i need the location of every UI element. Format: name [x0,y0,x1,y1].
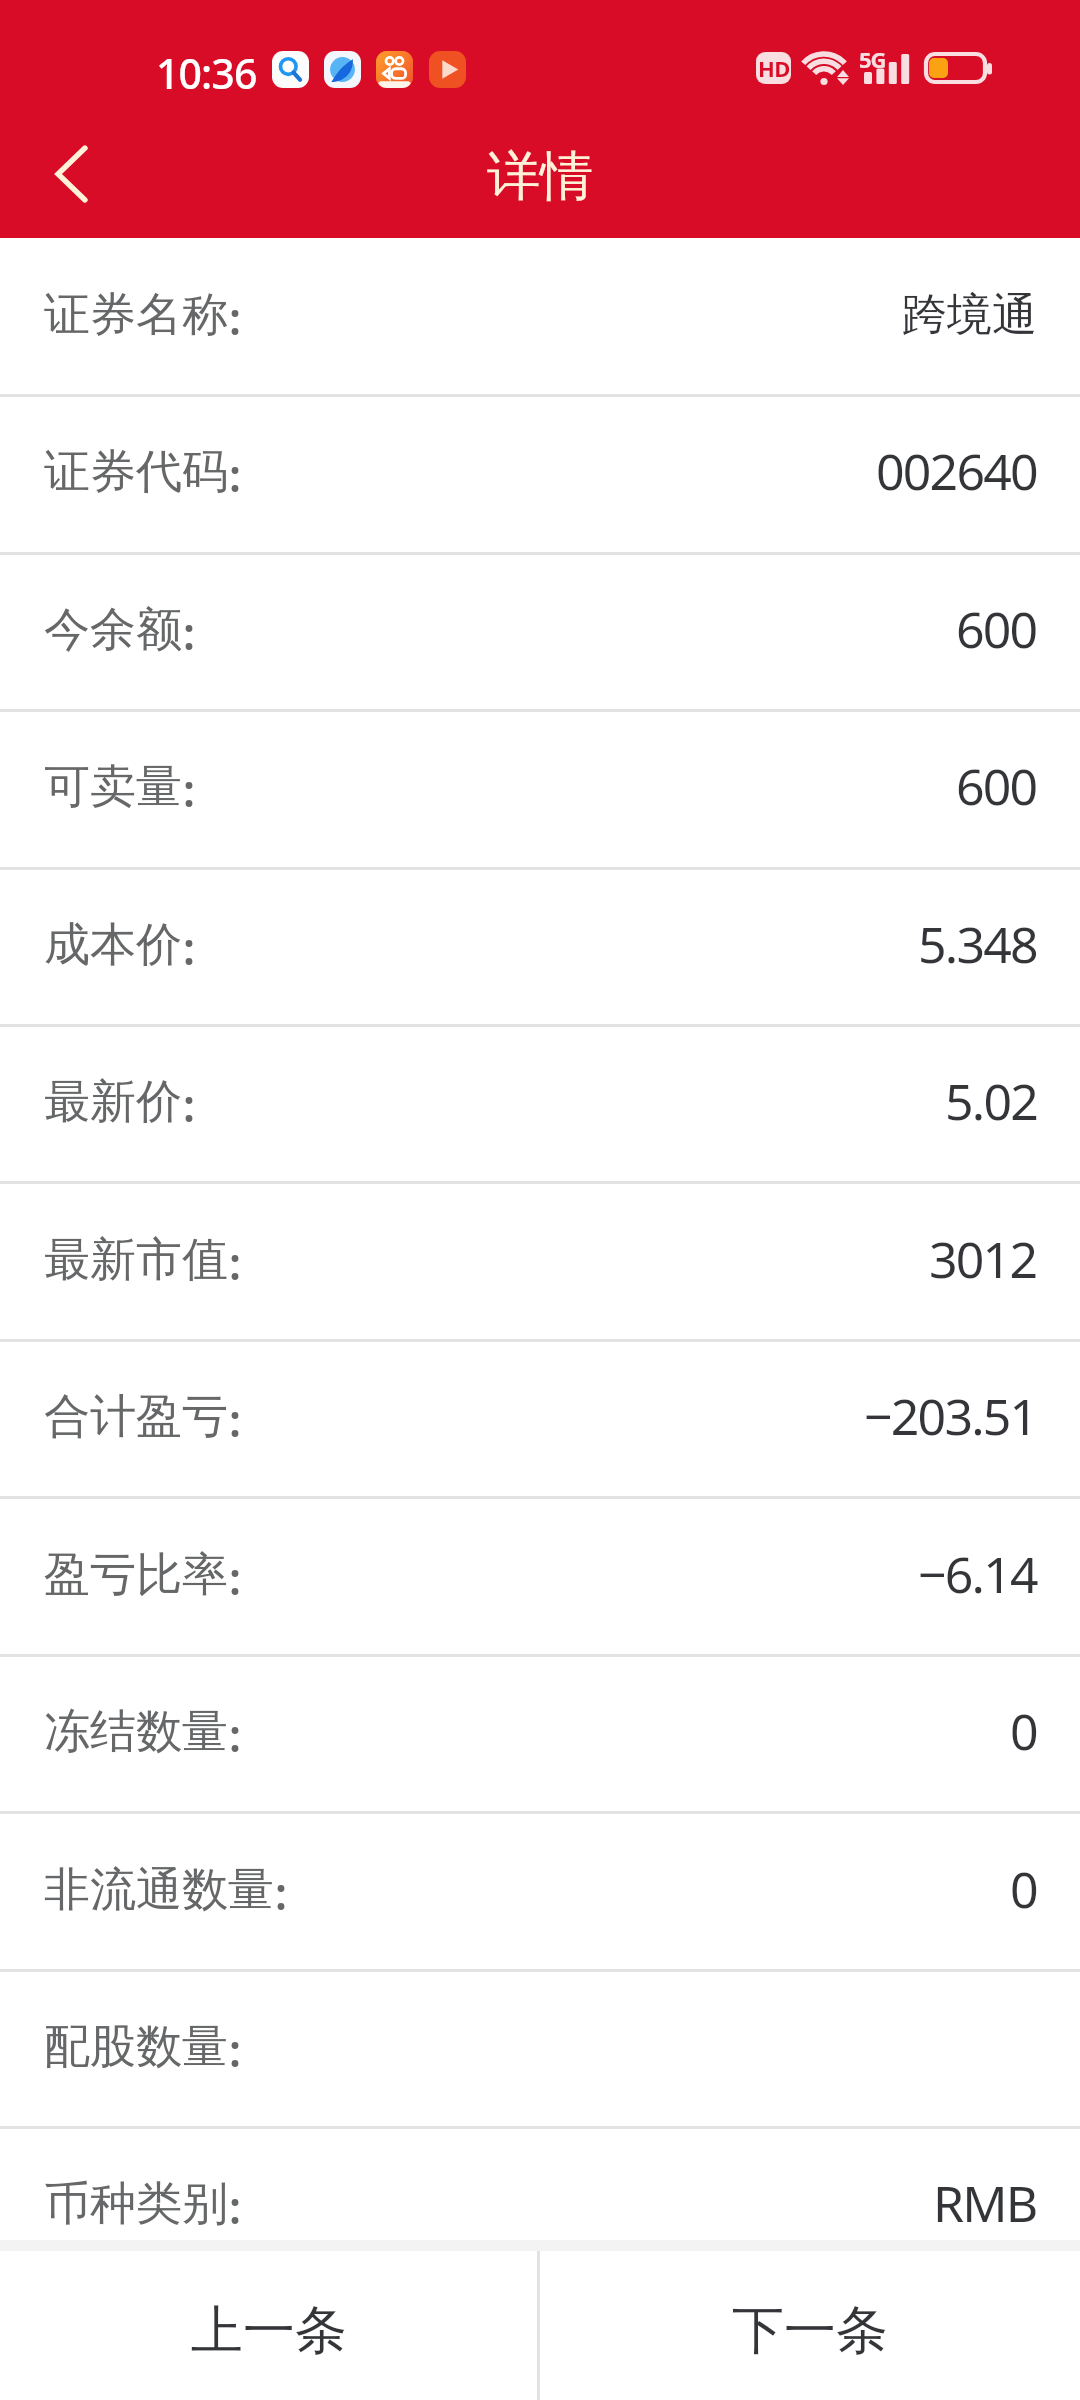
staticText: 5G [859,44,886,74]
staticText: RMB [933,2169,1037,2237]
staticText: 10:36 [156,45,257,101]
staticText: 跨境通 [902,287,1037,344]
button[interactable]: 冻结数量 [0,1655,1080,1812]
staticText: 最新价 [44,1073,182,1131]
button[interactable]: 今余额 [0,553,1080,710]
staticText: 600 [956,595,1037,663]
staticText: 5.348 [918,910,1037,978]
staticText: 002640 [876,437,1037,505]
staticText: 配股数量 [44,2018,228,2076]
button[interactable]: 证券名称 [0,238,1080,395]
staticText: 合计盈亏 [44,1388,228,1446]
staticText: −6.14 [918,1540,1037,1608]
button[interactable]: 币种类别 [0,2127,1080,2240]
staticText: 最新市值 [44,1231,228,1289]
staticText: 0 [1010,1855,1037,1923]
staticText: 详情 [487,143,593,210]
button[interactable]: 上一条 [0,2251,537,2400]
staticText: 证券名称 [44,286,228,344]
staticText: 600 [956,752,1037,820]
button[interactable]: 最新市值 [0,1183,1080,1340]
staticText: 可卖量 [44,758,182,816]
button[interactable]: 可卖量 [0,710,1080,867]
staticText: 证券代码 [44,443,228,501]
staticText: 冻结数量 [44,1703,228,1761]
staticText: 非流通数量 [44,1861,274,1919]
button[interactable]: 证券代码 [0,395,1080,552]
button[interactable]: 配股数量 [0,1970,1080,2127]
staticText: HD [758,53,790,83]
button[interactable]: 盈亏比率 [0,1498,1080,1655]
staticText: 盈亏比率 [44,1546,228,1604]
button[interactable]: 下一条 [540,2251,1080,2400]
button[interactable]: Back [17,118,129,230]
button[interactable]: 最新价 [0,1025,1080,1182]
button[interactable]: 合计盈亏 [0,1340,1080,1497]
staticText: 0 [1010,1697,1037,1765]
staticText: 币种类别 [44,2175,228,2233]
staticText: 上一条 [191,2298,347,2364]
staticText: −203.51 [864,1382,1037,1450]
staticText: 下一条 [732,2298,888,2364]
staticText: 5.02 [945,1067,1037,1135]
button[interactable]: 成本价 [0,868,1080,1025]
staticText: 成本价 [44,916,182,974]
staticText: 今余额 [44,601,182,659]
staticText: 3012 [929,1225,1037,1293]
button[interactable]: 非流通数量 [0,1813,1080,1970]
